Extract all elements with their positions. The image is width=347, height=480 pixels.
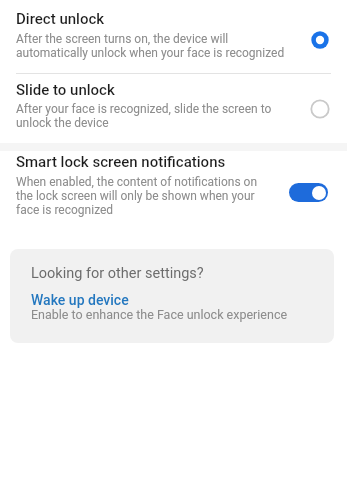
staticText: Smart lock screen notifications xyxy=(16,153,226,171)
staticText: Looking for other settings? xyxy=(31,265,204,282)
staticText: After the screen turns on, the device wi… xyxy=(16,32,285,60)
button[interactable]: Wake up device xyxy=(31,292,129,308)
staticText: Slide to unlock xyxy=(16,81,115,99)
button[interactable]: Direct unlock xyxy=(0,0,347,73)
button[interactable] xyxy=(289,183,328,202)
staticText: When enabled, the content of notificatio… xyxy=(16,175,258,217)
button[interactable]: Smart lock screen notifications xyxy=(0,151,347,223)
staticText: After your face is recognized, slide the… xyxy=(16,102,272,130)
staticText: Enable to enhance the Face unlock experi… xyxy=(31,307,288,322)
staticText: Direct unlock xyxy=(16,10,105,28)
staticText: Wake up device xyxy=(31,292,129,308)
button[interactable]: Slide to unlock xyxy=(0,74,347,143)
